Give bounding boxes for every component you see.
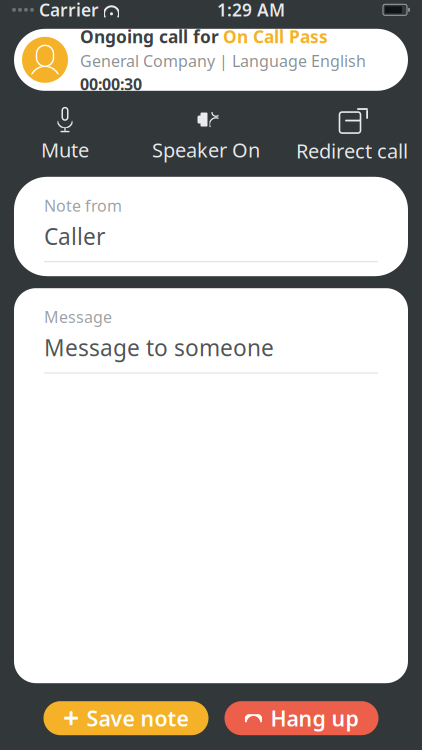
button[interactable]: Redirect call bbox=[292, 107, 412, 163]
button[interactable]: Note from bbox=[14, 177, 408, 276]
button[interactable]: Message bbox=[14, 288, 408, 683]
button[interactable]: Mute bbox=[10, 107, 120, 163]
staticText: Mute bbox=[41, 136, 89, 163]
staticText: Hang up bbox=[270, 704, 358, 732]
staticText: 00:00:30 bbox=[80, 73, 142, 94]
staticText: Caller bbox=[44, 221, 105, 251]
button[interactable]: Speaker On bbox=[141, 107, 271, 163]
staticText: Ongoing call for bbox=[80, 25, 219, 48]
staticText: Carrier bbox=[39, 0, 99, 21]
staticText: On Call Pass bbox=[223, 25, 328, 48]
staticText: General Company | Language English bbox=[80, 50, 366, 71]
staticText: Message bbox=[44, 306, 112, 327]
button[interactable]: Hang up bbox=[224, 701, 378, 735]
staticText: Redirect call bbox=[296, 137, 408, 164]
staticText: 1:29 AM bbox=[217, 0, 285, 21]
button[interactable]: Save note bbox=[43, 701, 208, 735]
button[interactable]: Ongoing call for bbox=[14, 29, 408, 91]
staticText: Save note bbox=[86, 704, 188, 732]
staticText: Note from bbox=[44, 195, 122, 216]
staticText: Message to someone bbox=[44, 332, 274, 362]
staticText: Speaker On bbox=[152, 136, 260, 163]
